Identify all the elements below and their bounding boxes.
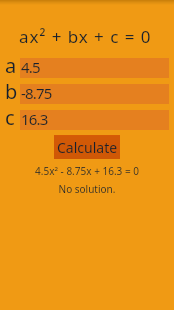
staticText: 4.5x² - 8.75x + 16.3 = 0 bbox=[0, 164, 174, 178]
staticText: b bbox=[5, 78, 18, 105]
staticText: No solution. bbox=[0, 182, 174, 196]
staticText: 16.3 bbox=[21, 109, 48, 129]
staticText: c bbox=[5, 104, 15, 131]
button[interactable]: 4.5 bbox=[20, 58, 169, 78]
button[interactable]: 16.3 bbox=[20, 110, 169, 130]
staticText: ax² + bx + c = 0 bbox=[19, 25, 152, 48]
staticText: -8.75 bbox=[21, 83, 52, 103]
staticText: 4.5 bbox=[21, 57, 40, 77]
staticText: Calculate bbox=[57, 138, 118, 157]
staticText: a bbox=[5, 52, 17, 79]
button[interactable]: Calculate bbox=[54, 135, 120, 159]
button[interactable]: -8.75 bbox=[20, 84, 169, 104]
